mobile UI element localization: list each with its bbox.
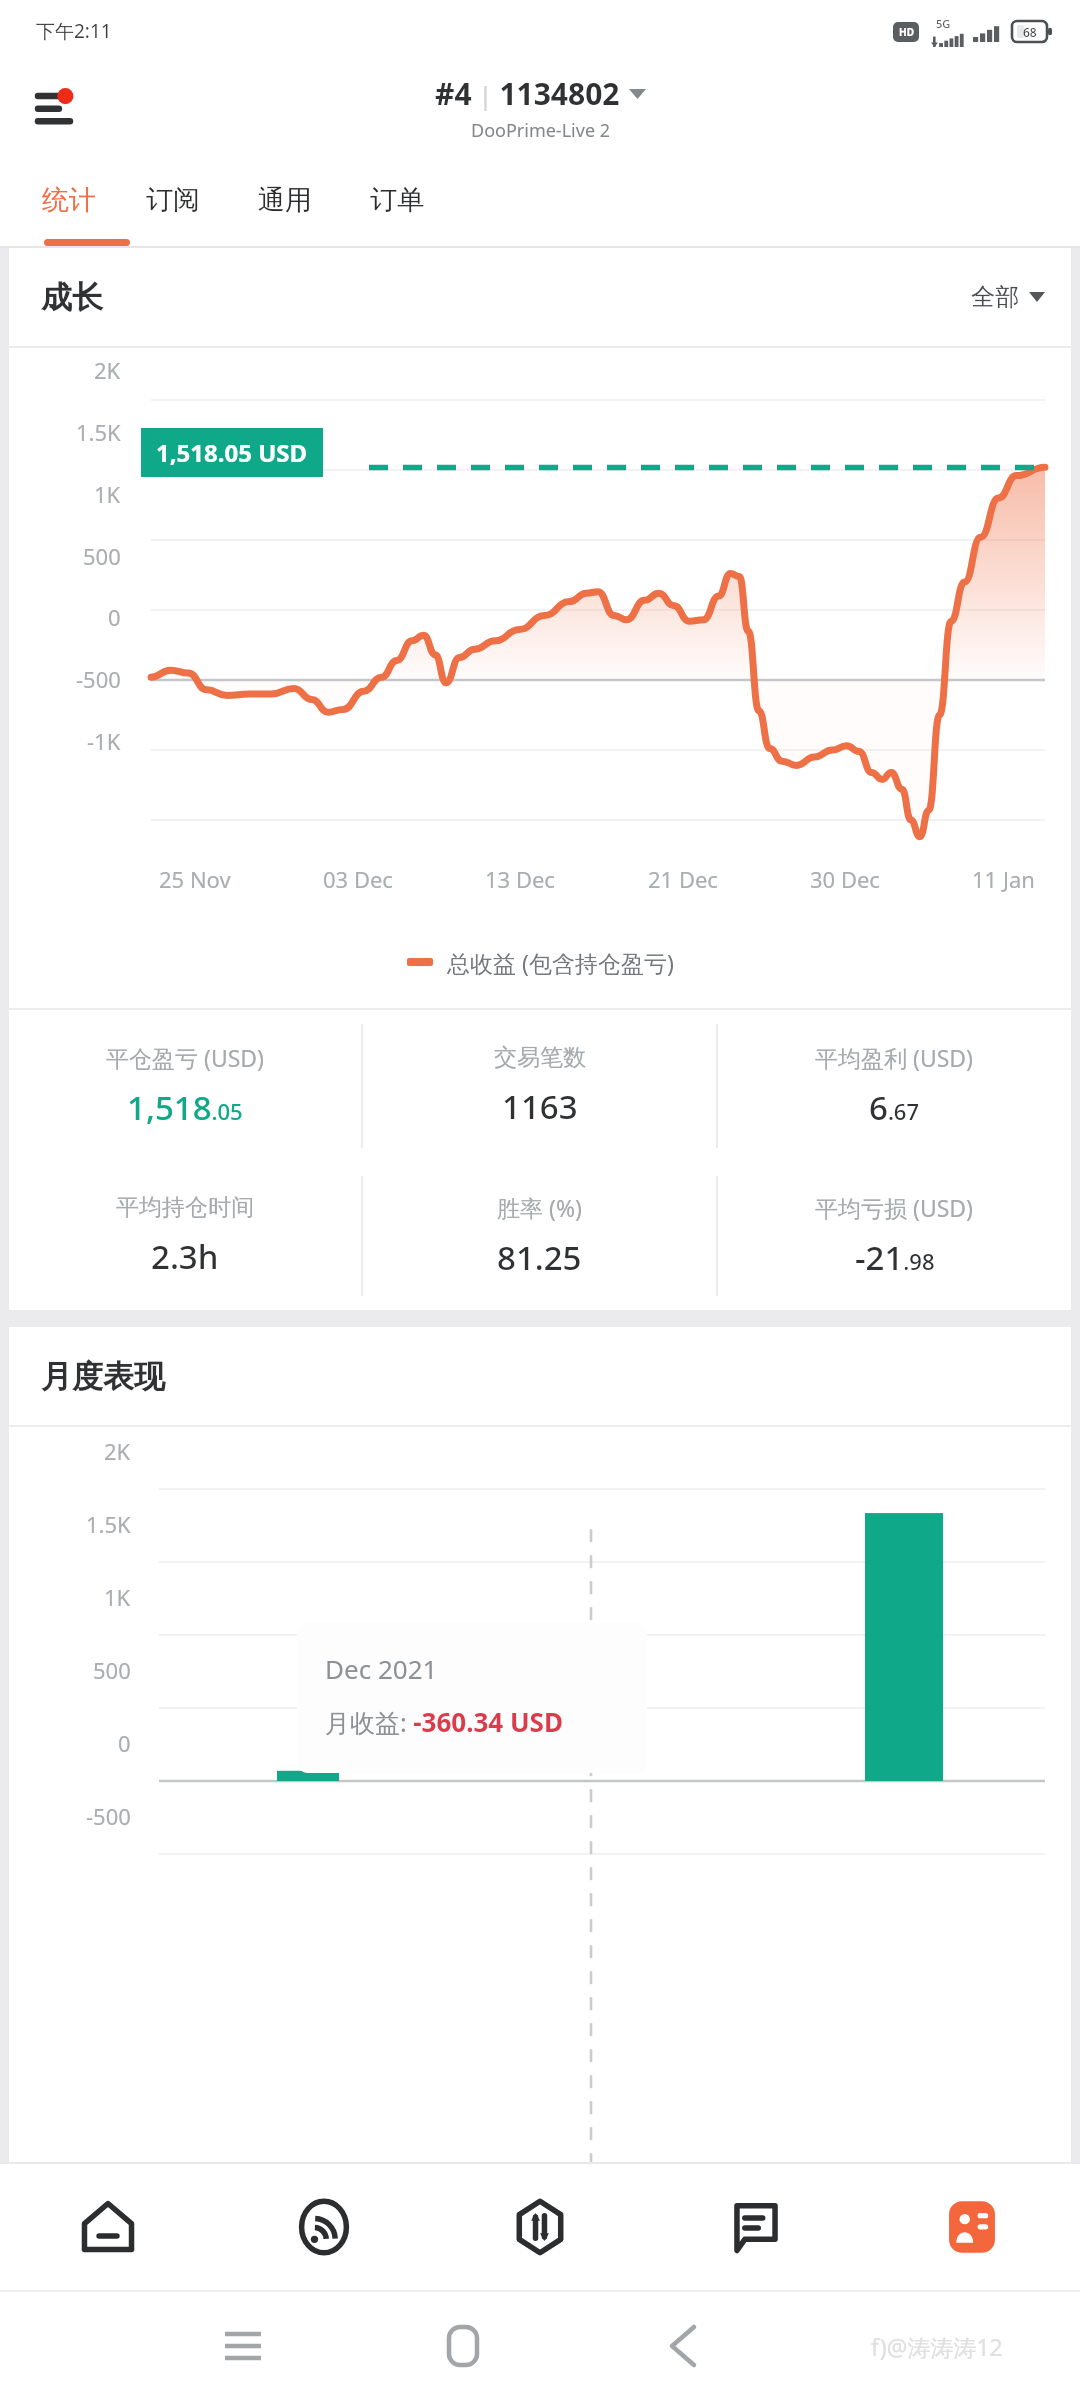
staticText: 胜率 (%) bbox=[497, 1192, 582, 1223]
button[interactable]: Profile bbox=[864, 2164, 1080, 2290]
staticText: 30 Dec bbox=[810, 864, 880, 894]
staticText: 25 Nov bbox=[159, 864, 231, 894]
staticText: 交易笔数 bbox=[494, 1043, 586, 1072]
staticText: 0 bbox=[108, 602, 121, 632]
staticText: 1,518.05 bbox=[127, 1085, 243, 1130]
button[interactable]: Home bbox=[0, 2164, 216, 2290]
staticText: 统计 bbox=[42, 183, 96, 217]
staticText: 1.5K bbox=[86, 1509, 131, 1533]
button[interactable]: 订阅 bbox=[146, 154, 258, 246]
button[interactable]: 交易笔数 bbox=[363, 1010, 716, 1162]
staticText: 平仓盈亏 (USD) bbox=[106, 1042, 265, 1073]
button[interactable]: 平仓盈亏 (USD) bbox=[9, 1010, 361, 1162]
staticText: 1K bbox=[94, 479, 121, 509]
staticText: 平均持仓时间 bbox=[116, 1193, 254, 1222]
staticText: 1.5K bbox=[76, 417, 121, 447]
staticText: f)@涛涛涛12 bbox=[871, 2331, 1003, 2362]
staticText: 5G bbox=[936, 16, 951, 31]
staticText: 21 Dec bbox=[648, 864, 718, 894]
staticText: 订单 bbox=[370, 183, 424, 217]
button[interactable]: 全部 bbox=[971, 282, 1045, 312]
button[interactable]: 平均持仓时间 bbox=[9, 1162, 361, 1310]
staticText: 03 Dec bbox=[323, 864, 393, 894]
button[interactable]: 统计 bbox=[42, 154, 146, 246]
staticText: -21.98 bbox=[855, 1235, 935, 1280]
staticText: 2K bbox=[104, 1436, 131, 1460]
staticText: 成长 bbox=[41, 278, 103, 317]
button[interactable]: #4 | 1134802 bbox=[435, 73, 646, 143]
staticText: 11 Jan bbox=[972, 864, 1035, 894]
staticText: 0 bbox=[118, 1728, 131, 1752]
staticText: 2K bbox=[94, 355, 121, 385]
staticText: 500 bbox=[93, 1655, 131, 1679]
staticText: 81.25 bbox=[497, 1235, 582, 1280]
staticText: 2.3h bbox=[151, 1234, 219, 1279]
staticText: HD bbox=[899, 25, 914, 39]
staticText: 下午2:11 bbox=[36, 18, 112, 44]
staticText: -1K bbox=[87, 726, 121, 756]
staticText: 全部 bbox=[971, 282, 1019, 312]
button[interactable]: 订单 bbox=[370, 154, 482, 246]
staticText: 月度表现 bbox=[41, 1357, 165, 1396]
staticText: 订阅 bbox=[146, 183, 200, 217]
button[interactable]: 平均盈利 (USD) bbox=[718, 1010, 1071, 1162]
staticText: 1K bbox=[104, 1582, 131, 1606]
staticText: 平均盈利 (USD) bbox=[815, 1042, 974, 1073]
staticText: 平均亏损 (USD) bbox=[815, 1192, 974, 1223]
button[interactable]: Signals bbox=[216, 2164, 432, 2290]
staticText: -500 bbox=[76, 664, 121, 694]
staticText: 月收益: -360.34 USD bbox=[325, 1704, 563, 1739]
button[interactable]: 胜率 (%) bbox=[363, 1162, 716, 1310]
staticText: #4 | 1134802 bbox=[435, 73, 620, 114]
button[interactable]: 通用 bbox=[258, 154, 370, 246]
staticText: 1163 bbox=[502, 1084, 578, 1129]
button[interactable]: Messages bbox=[648, 2164, 864, 2290]
staticText: 总收益 (包含持仓盈亏) bbox=[447, 947, 674, 978]
staticText: 500 bbox=[83, 541, 121, 571]
button[interactable]: Trade bbox=[432, 2164, 648, 2290]
staticText: 通用 bbox=[258, 183, 312, 217]
staticText: DooPrime-Live 2 bbox=[471, 118, 611, 143]
staticText: 6.67 bbox=[869, 1085, 920, 1130]
staticText: 13 Dec bbox=[485, 864, 555, 894]
button[interactable]: Menu bbox=[22, 72, 94, 144]
button[interactable]: 平均亏损 (USD) bbox=[718, 1162, 1071, 1310]
staticText: -500 bbox=[86, 1801, 131, 1825]
staticText: 1,518.05 USD bbox=[156, 436, 308, 469]
staticText: Dec 2021 bbox=[325, 1651, 438, 1686]
staticText: 68 bbox=[1023, 24, 1037, 40]
